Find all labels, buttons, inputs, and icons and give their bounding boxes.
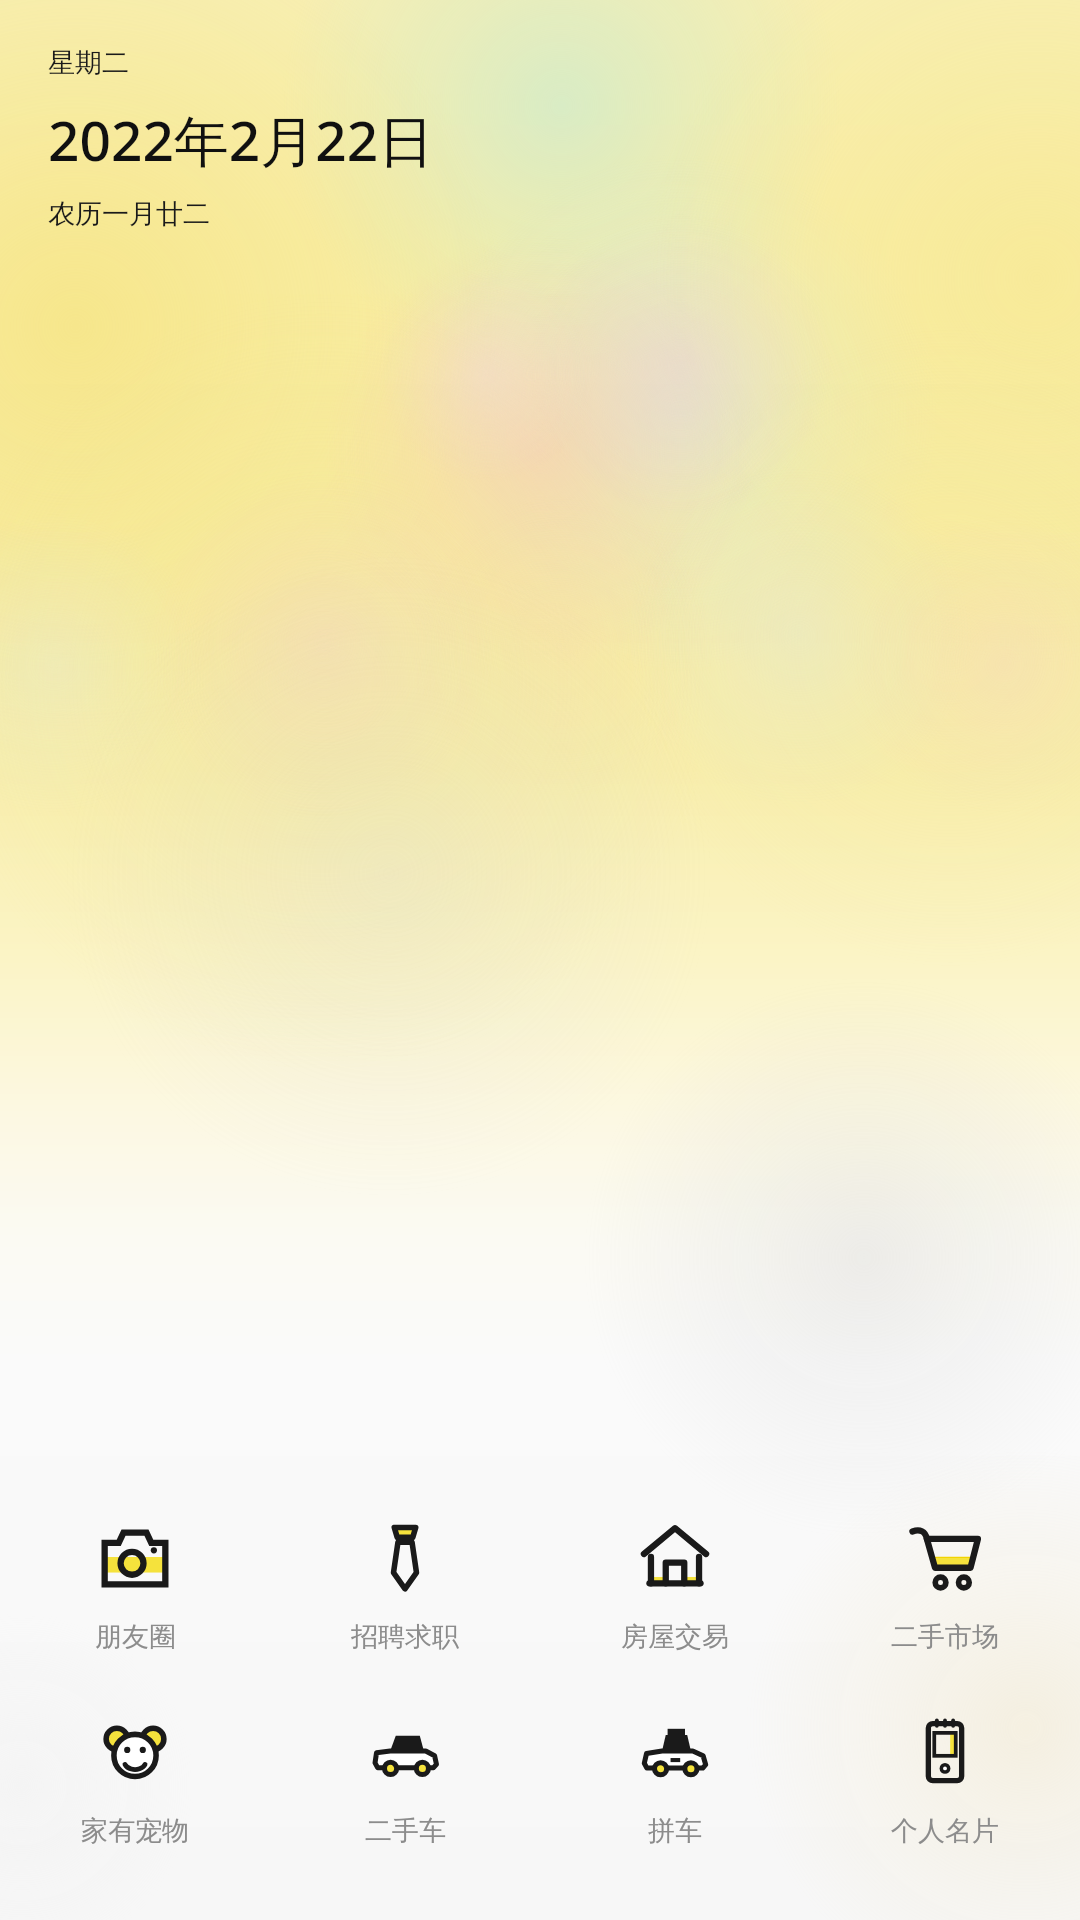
other: 招聘求职 [368, 1520, 442, 1594]
other: 二手车 [368, 1714, 442, 1788]
staticText: 家有宠物 [81, 1814, 189, 1848]
staticText: 朋友圈 [95, 1620, 176, 1654]
other: 二手市场 [908, 1520, 982, 1594]
staticText: 拼车 [648, 1814, 702, 1848]
staticText: 个人名片 [891, 1814, 999, 1848]
other: 个人名片 [908, 1714, 982, 1788]
button[interactable]: 二手车 [270, 1710, 540, 1852]
staticText: 星期二 [48, 46, 129, 80]
staticText: 二手市场 [891, 1620, 999, 1654]
button[interactable]: 拼车 [540, 1710, 810, 1852]
other: 拼车 [638, 1714, 712, 1788]
other: 朋友圈 [98, 1520, 172, 1594]
staticText: 招聘求职 [351, 1620, 459, 1654]
button[interactable]: 家有宠物 [0, 1710, 270, 1852]
staticText: 房屋交易 [621, 1620, 729, 1654]
button[interactable]: 招聘求职 [270, 1516, 540, 1658]
staticText: 2022年2月22日 [48, 102, 434, 177]
button[interactable]: 朋友圈 [0, 1516, 270, 1658]
other: 房屋交易 [638, 1520, 712, 1594]
button[interactable]: 个人名片 [810, 1710, 1080, 1852]
button[interactable]: 房屋交易 [540, 1516, 810, 1658]
staticText: 农历一月廿二 [48, 197, 210, 231]
button[interactable]: 二手市场 [810, 1516, 1080, 1658]
other: 家有宠物 [98, 1714, 172, 1788]
staticText: 二手车 [365, 1814, 446, 1848]
